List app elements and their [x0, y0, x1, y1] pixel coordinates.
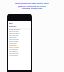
button[interactable]: Compose BOM	[8, 32, 31, 34]
staticText: Coroutines	[9, 42, 17, 44]
staticText: Kotlin version	[9, 30, 19, 32]
staticText: Target SDK	[9, 36, 17, 38]
staticText: Navigation	[9, 44, 17, 46]
staticText: Material icons	[9, 52, 19, 54]
button[interactable]: Hilt injection	[8, 48, 31, 50]
staticText: Accompanist	[9, 54, 19, 56]
staticText: Java toolchain	[9, 38, 19, 40]
staticText: Build beautiful apps faster with Jetpack…	[3, 2, 61, 10]
button[interactable]: Kotlin version	[8, 30, 31, 32]
staticText: Gradle wrapper	[9, 28, 20, 30]
staticText: Gradle plugin	[9, 40, 19, 42]
button[interactable]: Navigation	[8, 44, 31, 46]
staticText: Min SDK level	[9, 34, 19, 36]
button[interactable]: Gradle wrapper	[8, 28, 31, 30]
button[interactable]: Accompanist	[8, 54, 31, 56]
button[interactable]: Material icons	[8, 52, 31, 54]
button[interactable]: Coroutines	[8, 42, 31, 44]
button[interactable]: Min SDK level	[8, 34, 31, 36]
staticText: Serialization	[9, 50, 18, 52]
staticText: Hilt injection	[9, 48, 18, 50]
staticText: Edit buildSrc	[9, 22, 17, 27]
button[interactable]: Target SDK	[8, 36, 31, 38]
button[interactable]: Room runtime	[8, 46, 31, 48]
staticText: Compose BOM	[9, 32, 20, 34]
button[interactable]: Serialization	[8, 50, 31, 52]
button[interactable]: Gradle plugin	[8, 40, 31, 42]
button[interactable]: Java toolchain	[8, 38, 31, 40]
staticText: Room runtime	[9, 46, 20, 48]
